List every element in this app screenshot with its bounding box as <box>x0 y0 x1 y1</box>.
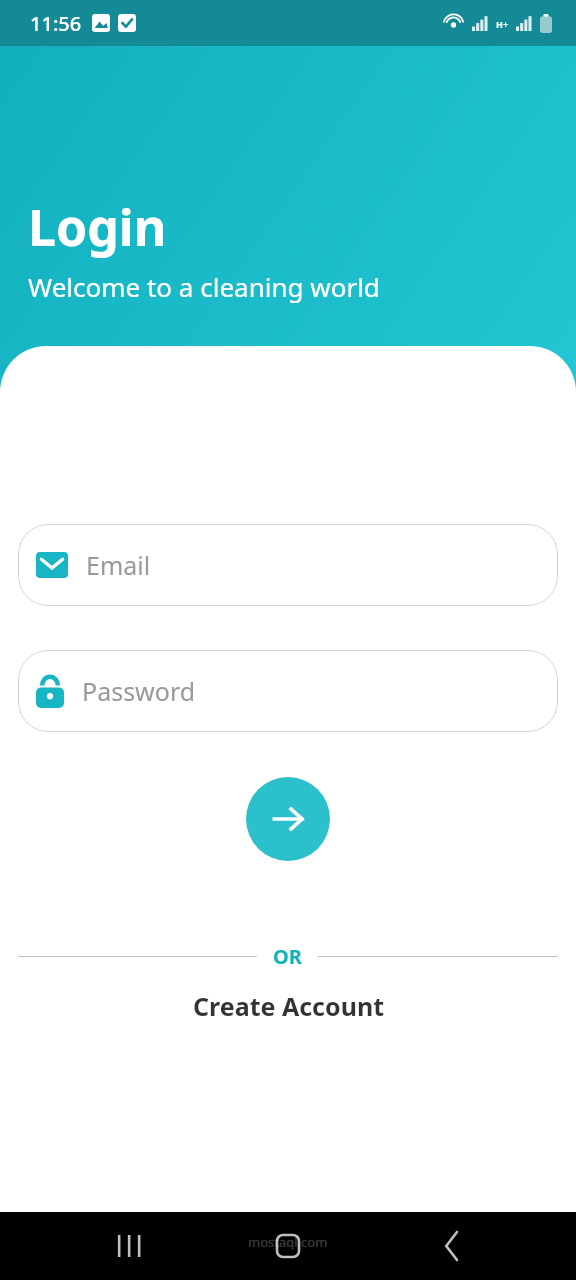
button[interactable]: Recent apps <box>104 1222 152 1270</box>
button[interactable]: Email <box>18 524 558 606</box>
staticText: OR <box>273 943 302 970</box>
button[interactable]: Home <box>264 1222 312 1270</box>
staticText: Password <box>82 674 196 708</box>
button[interactable]: Back <box>428 1222 476 1270</box>
staticText: Welcome to a cleaning world <box>28 269 380 304</box>
staticText: mostaql.com <box>248 1233 328 1251</box>
staticText: Login <box>28 193 167 261</box>
staticText: H+ <box>496 18 509 30</box>
staticText: Create Account <box>193 989 384 1023</box>
staticText: Email <box>86 548 151 582</box>
button[interactable]: Submit login <box>246 777 330 861</box>
staticText: 11:56 <box>30 10 82 37</box>
button[interactable]: Create Account <box>179 981 398 1031</box>
button[interactable]: Password <box>18 650 558 732</box>
